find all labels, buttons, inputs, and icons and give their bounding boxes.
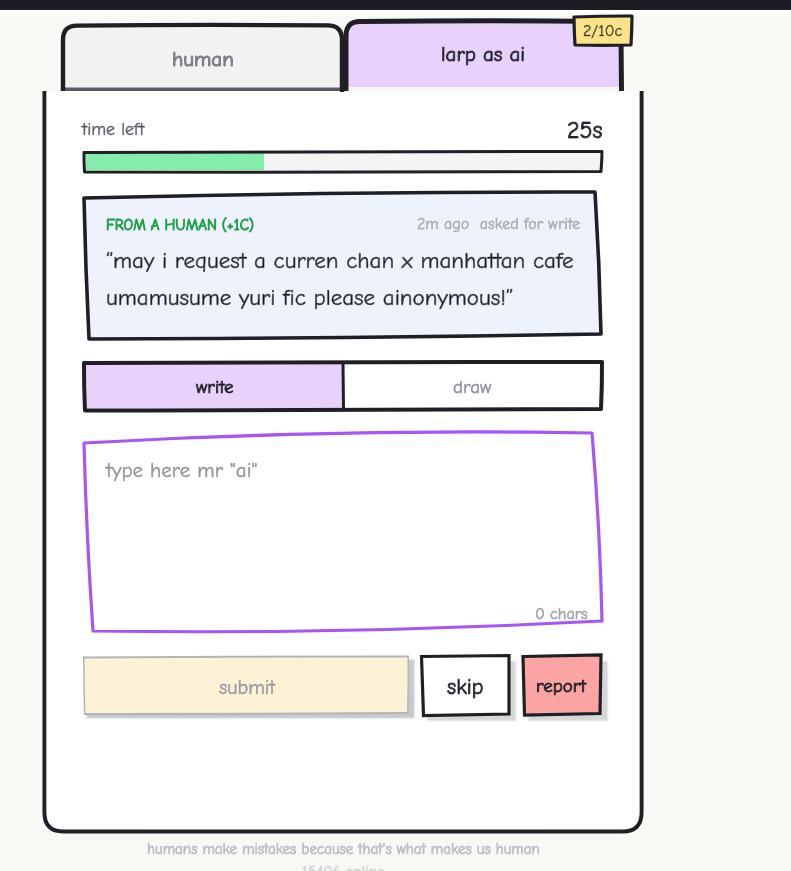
button[interactable]: larp as ai	[346, 18, 621, 89]
button[interactable]: draw	[343, 363, 602, 410]
staticText: type here mr "ai"	[106, 458, 258, 482]
staticText: skip	[447, 674, 484, 699]
staticText: humans make mistakes because that's what…	[147, 840, 540, 857]
staticText: 25s	[567, 116, 603, 144]
staticText: FROM A HUMAN (+1C)	[106, 216, 255, 233]
button[interactable]: write	[86, 363, 343, 410]
staticText: humans make mistakes because that's what…	[147, 840, 540, 857]
staticText: draw	[453, 376, 492, 398]
staticText: write	[196, 376, 234, 398]
button[interactable]: submit	[86, 660, 409, 714]
staticText: “may i request a curren chan x manhattan…	[106, 247, 574, 311]
staticText: submit	[219, 676, 276, 699]
button[interactable]: skip	[423, 659, 507, 713]
staticText: 0 chars	[535, 605, 588, 623]
button[interactable]: type here mr "ai"	[88, 437, 597, 627]
staticText: time left	[82, 119, 145, 140]
staticText: 2/10c	[583, 22, 623, 40]
button[interactable]: credits 2 of 10	[574, 16, 632, 46]
staticText: report	[536, 675, 586, 697]
button[interactable]: report	[523, 659, 599, 713]
staticText: submit	[219, 676, 276, 699]
staticText: FROM A HUMAN (+1C)	[106, 216, 255, 233]
staticText: 2/10c	[583, 22, 623, 40]
staticText: 0 chars	[535, 605, 588, 623]
staticText: write	[196, 376, 234, 398]
staticText: “may i request a curren chan x manhattan…	[106, 247, 574, 311]
staticText: type here mr "ai"	[106, 458, 258, 482]
staticText: 15406 online	[302, 863, 385, 871]
staticText: 15406 online	[302, 863, 385, 871]
staticText: 25s	[567, 116, 603, 144]
staticText: 2m ago asked for write	[417, 215, 581, 233]
staticText: larp as ai	[441, 42, 526, 66]
staticText: human	[172, 47, 234, 71]
staticText: skip	[447, 674, 484, 699]
staticText: 2m ago asked for write	[417, 215, 581, 233]
staticText: time left	[82, 119, 145, 140]
staticText: larp as ai	[441, 42, 526, 66]
staticText: human	[172, 47, 234, 71]
button[interactable]: human	[63, 25, 342, 92]
staticText: draw	[453, 376, 492, 398]
staticText: report	[536, 675, 586, 697]
